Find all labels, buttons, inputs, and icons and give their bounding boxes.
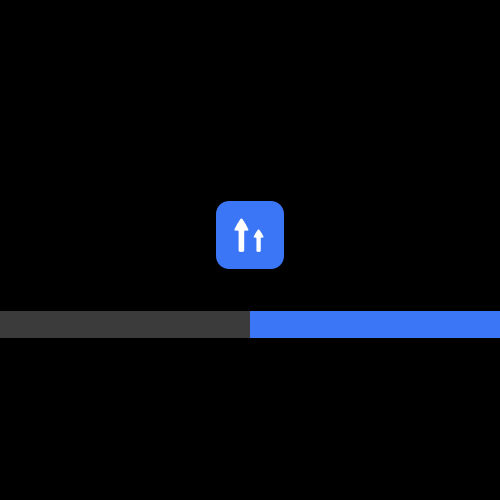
group: App icon [216,201,284,269]
group: 50 percent [0,311,500,338]
